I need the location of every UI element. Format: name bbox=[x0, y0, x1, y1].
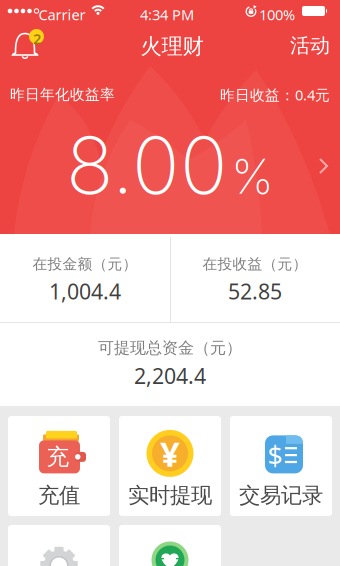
button[interactable]: 通知 bbox=[0, 22, 52, 66]
button[interactable]: 收益详情 bbox=[317, 156, 331, 176]
staticText: $ bbox=[267, 438, 282, 473]
staticText: 2,204.4 bbox=[134, 362, 206, 390]
staticText: 2 bbox=[33, 29, 41, 48]
button[interactable]: 充 bbox=[8, 416, 110, 516]
button[interactable]: 活动 bbox=[284, 22, 336, 66]
staticText: 充值 bbox=[38, 482, 80, 509]
staticText: ¥ bbox=[160, 430, 180, 476]
staticText: 1,004.4 bbox=[49, 277, 121, 305]
staticText: 4:34 PM bbox=[140, 5, 194, 24]
staticText: 活动 bbox=[290, 33, 330, 58]
staticText: Carrier bbox=[38, 5, 85, 24]
staticText: 实时提现 bbox=[128, 482, 212, 509]
staticText: 交易记录 bbox=[239, 482, 323, 509]
staticText: 8.00 bbox=[66, 117, 228, 213]
staticText: 可提现总资金（元） bbox=[98, 338, 242, 358]
staticText: 火理财 bbox=[140, 33, 203, 60]
staticText: 在投收益（元） bbox=[202, 255, 307, 273]
button[interactable]: 设置 bbox=[8, 525, 110, 566]
staticText: 100% bbox=[259, 5, 295, 24]
staticText: 充 bbox=[46, 443, 69, 471]
button[interactable]: 邀请好友 bbox=[119, 525, 221, 566]
button[interactable]: ¥ bbox=[119, 416, 221, 516]
button[interactable]: $ bbox=[230, 416, 332, 516]
staticText: % bbox=[231, 147, 274, 205]
staticText: 昨日年化收益率 bbox=[10, 86, 115, 104]
staticText: 昨日收益：0.4元 bbox=[220, 85, 330, 104]
staticText: 在投金额（元） bbox=[32, 255, 137, 273]
staticText: 52.85 bbox=[228, 277, 282, 305]
